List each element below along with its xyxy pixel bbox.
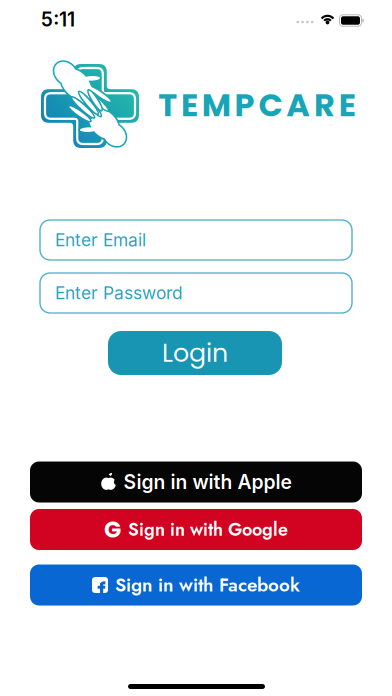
staticText: Enter Email: [55, 229, 146, 250]
staticText: Enter Password: [55, 282, 183, 303]
staticText: G: [104, 514, 121, 545]
button[interactable]: Sign in with Facebook: [30, 564, 362, 605]
staticText: Login: [162, 335, 228, 371]
staticText: 5:11: [41, 8, 75, 31]
staticText: TEMPCARE: [158, 83, 356, 127]
button[interactable]: Sign in with Apple: [30, 461, 362, 502]
staticText: Sign in with Google: [128, 516, 288, 542]
button[interactable]: Login: [108, 331, 282, 375]
staticText: Sign in with Apple: [123, 470, 291, 494]
staticText: Sign in with Facebook: [115, 571, 300, 598]
button[interactable]: G: [30, 509, 362, 550]
